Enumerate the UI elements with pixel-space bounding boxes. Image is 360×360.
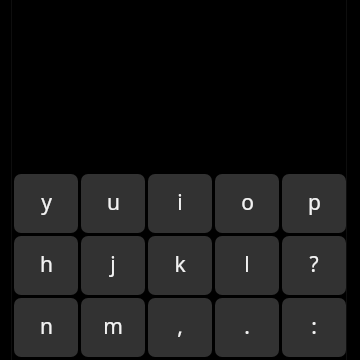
- button[interactable]: ,: [148, 298, 212, 357]
- button[interactable]: .: [215, 298, 279, 357]
- staticText: ?: [309, 250, 319, 279]
- staticText: y: [41, 188, 52, 217]
- button[interactable]: p: [282, 174, 346, 233]
- button[interactable]: n: [14, 298, 78, 357]
- button[interactable]: y: [14, 174, 78, 233]
- staticText: .: [244, 312, 250, 341]
- staticText: h: [40, 250, 53, 279]
- staticText: p: [308, 188, 321, 217]
- button[interactable]: m: [81, 298, 145, 357]
- button[interactable]: l: [215, 236, 279, 295]
- button[interactable]: i: [148, 174, 212, 233]
- button[interactable]: h: [14, 236, 78, 295]
- staticText: n: [40, 312, 53, 341]
- staticText: ,: [177, 312, 183, 341]
- button[interactable]: ?: [282, 236, 346, 295]
- button[interactable]: j: [81, 236, 145, 295]
- button[interactable]: u: [81, 174, 145, 233]
- button[interactable]: :: [282, 298, 346, 357]
- staticText: :: [311, 312, 317, 341]
- staticText: l: [244, 250, 250, 279]
- staticText: u: [107, 188, 120, 217]
- staticText: m: [103, 312, 123, 341]
- button[interactable]: o: [215, 174, 279, 233]
- staticText: k: [174, 250, 186, 279]
- staticText: j: [110, 250, 116, 279]
- staticText: o: [241, 188, 254, 217]
- staticText: i: [177, 188, 183, 217]
- button[interactable]: k: [148, 236, 212, 295]
